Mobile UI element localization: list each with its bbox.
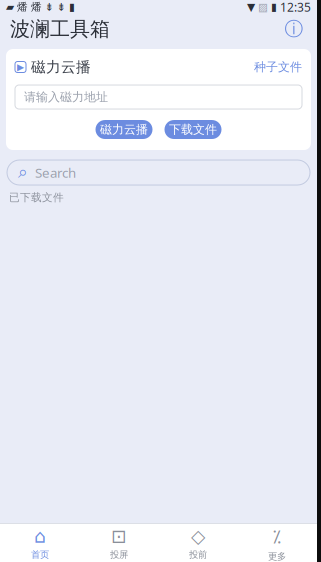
staticText: ⇟	[57, 1, 66, 13]
staticText: 磁力云播	[100, 122, 148, 137]
button[interactable]: 种子文件	[254, 60, 302, 74]
staticText: 燔	[17, 0, 28, 13]
button[interactable]: 下载文件	[164, 120, 221, 139]
staticText: ⌂	[34, 526, 46, 547]
staticText: 投屏	[110, 549, 128, 560]
staticText: ⌕	[18, 164, 28, 181]
staticText: 燔	[31, 0, 42, 13]
staticText: ▶	[17, 62, 24, 72]
staticText: 投前	[189, 549, 207, 560]
staticText: 种子文件	[254, 60, 302, 74]
staticText: ◇	[191, 526, 205, 547]
staticText: ⊡	[111, 526, 127, 547]
staticText: ▮	[69, 1, 75, 13]
button[interactable]: 磁力云播	[95, 120, 152, 139]
staticText: 更多	[268, 551, 286, 562]
staticText: ⓘ	[284, 17, 303, 40]
staticText: ⇟	[45, 1, 54, 13]
staticText: ▰	[6, 1, 14, 13]
staticText: 12:35	[280, 0, 311, 15]
staticText: ⁒	[273, 524, 280, 549]
staticText: Search	[35, 164, 76, 181]
staticText: 请输入磁力地址	[24, 90, 108, 104]
button[interactable]: ⁒	[237, 524, 316, 562]
staticText: 下载文件	[169, 122, 217, 137]
staticText: ▮	[271, 1, 277, 13]
button[interactable]: ⊡	[79, 524, 158, 562]
button[interactable]: About	[281, 16, 307, 42]
staticText: ▼	[247, 1, 255, 13]
staticText: 已下载文件	[9, 191, 64, 204]
button[interactable]: ◇	[158, 524, 237, 562]
staticText: 首页	[31, 549, 49, 560]
button[interactable]: ⌕	[7, 160, 310, 185]
staticText: ▨	[258, 1, 268, 13]
staticText: 波澜工具箱	[10, 17, 110, 41]
staticText: 磁力云播	[31, 58, 91, 76]
button[interactable]: ⌂	[0, 524, 79, 562]
